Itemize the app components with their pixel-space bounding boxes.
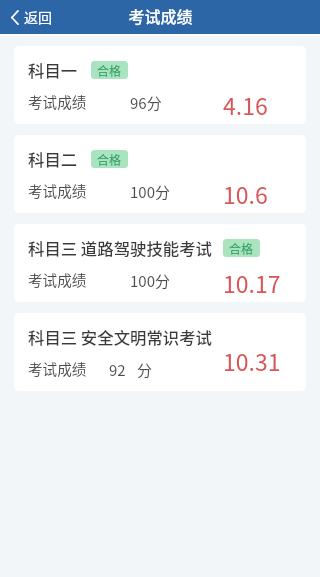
staticText: 分 [137,359,153,381]
staticText: 考试成绩 [28,91,87,112]
staticText: 合格 [97,62,122,79]
staticText: 考试成绩 [128,4,193,27]
staticText: 返回 [24,7,52,27]
staticText: 92 [109,359,126,381]
button[interactable]: 科目三 安全文明常识考试 [14,313,306,391]
staticText: 科目三 道路驾驶技能考试 [28,236,212,260]
staticText: 科目一 [28,58,78,82]
staticText: 科目二 [28,147,78,171]
staticText: 科目三 安全文明常识考试 [28,325,212,349]
button[interactable]: 科目二 [14,135,306,213]
other: Back [11,10,18,25]
staticText: 96分 [130,92,162,114]
staticText: 10.6 [223,177,268,210]
button[interactable]: 科目三 道路驾驶技能考试 [14,224,306,302]
staticText: 考试成绩 [28,358,87,379]
staticText: 100分 [130,181,170,203]
button[interactable]: Back [9,3,54,31]
staticText: 考试成绩 [28,180,87,201]
staticText: 考试成绩 [28,269,87,290]
staticText: 10.17 [223,266,281,299]
staticText: 合格 [229,240,254,257]
button[interactable]: 科目一 [14,46,306,124]
staticText: 100分 [130,270,170,292]
staticText: 4.16 [223,88,268,121]
staticText: 10.31 [223,344,281,377]
staticText: 合格 [97,151,122,168]
